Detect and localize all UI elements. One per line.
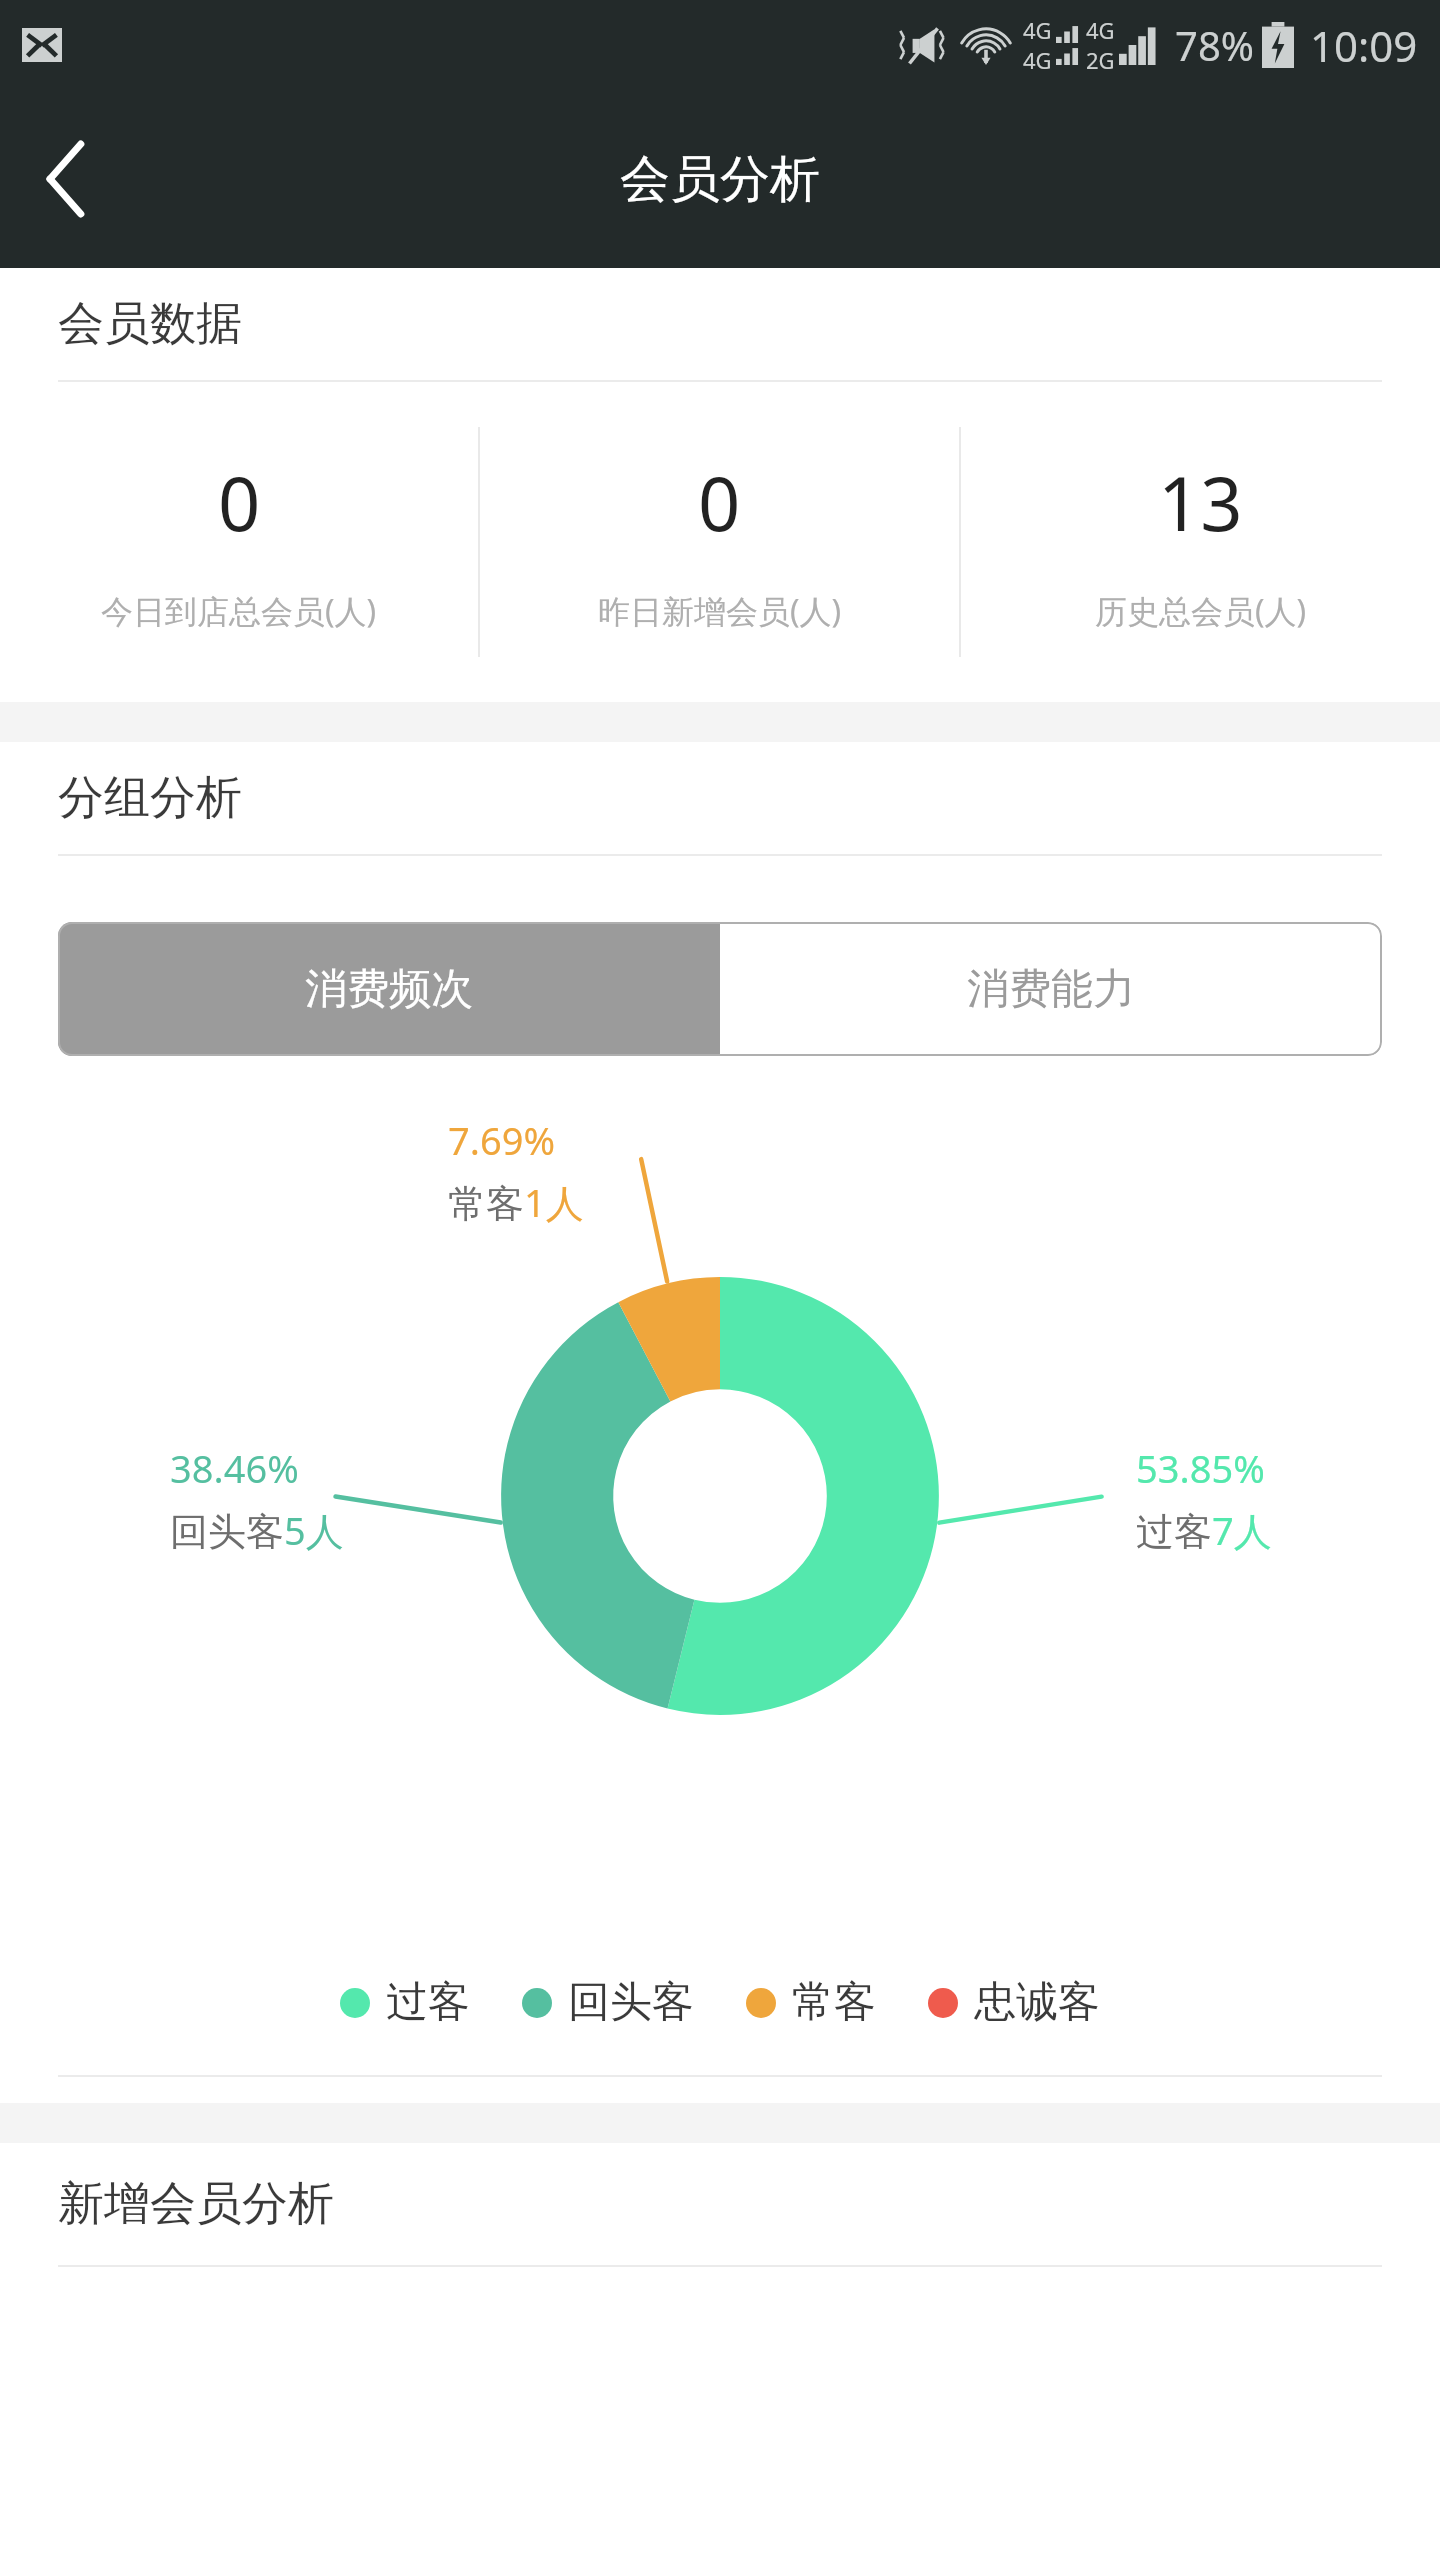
- staticText: 新增会员分析: [58, 2175, 334, 2233]
- button[interactable]: 忠诚客: [928, 1976, 1100, 2029]
- staticText: 会员分析: [620, 148, 820, 211]
- staticText: 4G: [1023, 45, 1052, 75]
- staticText: 0: [698, 452, 741, 553]
- staticText: 38.46%: [170, 1442, 299, 1494]
- staticText: 7.69%: [448, 1114, 555, 1166]
- staticText: 4G: [1086, 15, 1115, 45]
- button[interactable]: 0: [480, 382, 959, 702]
- staticText: 0: [218, 452, 261, 553]
- staticText: 10:09: [1310, 17, 1418, 74]
- button[interactable]: 消费频次: [58, 922, 720, 1056]
- staticText: 13: [1158, 452, 1243, 553]
- button[interactable]: Back: [0, 114, 130, 244]
- staticText: 今日到店总会员(人): [101, 589, 377, 633]
- staticText: 4G: [1023, 15, 1052, 45]
- staticText: 常客: [792, 1976, 876, 2029]
- staticText: 会员数据: [58, 295, 242, 353]
- button[interactable]: 常客: [746, 1976, 876, 2029]
- staticText: 分组分析: [58, 769, 242, 827]
- staticText: 78%: [1175, 18, 1254, 72]
- staticText: 2G: [1086, 45, 1115, 75]
- staticText: 过客7人: [1136, 1504, 1272, 1556]
- staticText: 消费频次: [305, 963, 473, 1016]
- staticText: 回头客: [568, 1976, 694, 2029]
- button[interactable]: 13: [961, 382, 1440, 702]
- staticText: 昨日新增会员(人): [598, 589, 842, 633]
- staticText: 消费能力: [967, 963, 1135, 1016]
- staticText: 历史总会员(人): [1095, 589, 1307, 633]
- staticText: 回头客5人: [170, 1504, 344, 1556]
- staticText: 忠诚客: [974, 1976, 1100, 2029]
- staticText: 53.85%: [1136, 1442, 1265, 1494]
- button[interactable]: 消费能力: [720, 922, 1382, 1056]
- staticText: 过客: [386, 1976, 470, 2029]
- staticText: 常客1人: [448, 1176, 584, 1228]
- button[interactable]: 回头客: [522, 1976, 694, 2029]
- button[interactable]: 0: [0, 382, 478, 702]
- button[interactable]: 过客: [340, 1976, 470, 2029]
